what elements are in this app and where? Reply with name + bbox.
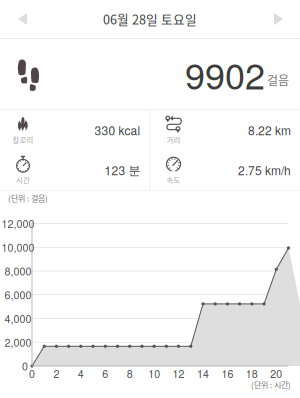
staticText: 330 kcal [94,121,140,139]
staticText: 12,000 [1,216,34,231]
staticText: 12 [173,366,185,381]
staticText: (단위 : 시간) [251,379,291,390]
staticText: 칼로리 [12,134,33,145]
button[interactable]: 시간 [0,150,149,190]
staticText: 16 [221,366,233,381]
staticText: 8.22 km [248,121,291,139]
staticText: 8 [127,366,133,381]
staticText: 시간 [16,174,30,185]
staticText: 20 [270,366,282,381]
button[interactable]: Previous day [0,0,39,38]
button[interactable]: 속도 [150,150,300,190]
staticText: (단위 : 걸음) [8,192,48,204]
staticText: 18 [246,366,258,381]
button[interactable]: 칼로리 [0,110,149,150]
staticText: 9902 [185,48,265,100]
staticText: 8,000 [4,263,31,279]
staticText: 4,000 [4,311,31,326]
staticText: 2 [53,366,59,381]
staticText: 속도 [166,174,180,185]
staticText: 6 [102,366,108,381]
staticText: 걸음 [267,71,289,89]
staticText: 10 [148,366,160,381]
staticText: 06월 28일 토요일 [103,10,197,28]
staticText: 4 [78,366,84,381]
staticText: 10,000 [1,240,34,255]
staticText: 0 [29,366,35,381]
staticText: 6,000 [4,287,31,302]
staticText: 123 분 [104,161,140,179]
staticText: 2.75 km/h [238,161,291,179]
staticText: 거리 [166,134,180,145]
button[interactable]: 거리 [150,110,300,150]
staticText: 0 [22,358,28,374]
button[interactable]: Next day [262,0,300,38]
staticText: 2,000 [4,335,31,350]
staticText: 14 [197,366,209,381]
